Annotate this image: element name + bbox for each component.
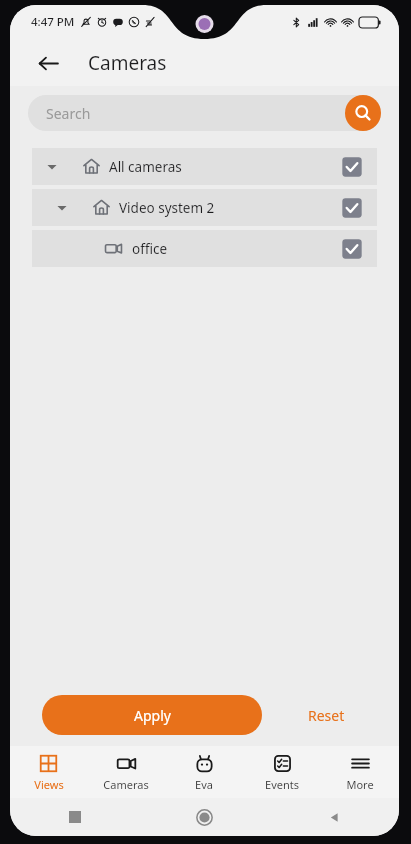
button[interactable]: Back: [28, 43, 68, 83]
staticText: Eva: [195, 777, 213, 792]
button[interactable]: Search: [345, 95, 381, 131]
staticText: More: [346, 777, 374, 792]
button[interactable]: office: [32, 230, 377, 267]
button[interactable]: Apply: [42, 695, 262, 735]
staticText: Video system 2: [119, 199, 215, 217]
staticText: office: [132, 240, 168, 258]
button[interactable]: All cameras: [32, 148, 377, 185]
button[interactable]: Events: [243, 746, 321, 798]
button[interactable]: Video system 2: [32, 189, 377, 226]
button[interactable]: Cameras: [87, 746, 165, 798]
button[interactable]: Selected: [341, 197, 363, 219]
button[interactable]: Search: [28, 95, 381, 131]
staticText: All cameras: [109, 158, 182, 176]
staticText: Search: [46, 104, 91, 123]
button[interactable]: Selected: [341, 238, 363, 260]
staticText: Events: [265, 777, 299, 792]
staticText: Views: [34, 777, 64, 792]
button[interactable]: Back: [269, 798, 399, 836]
button[interactable]: Home: [139, 798, 269, 836]
button[interactable]: Views: [10, 746, 87, 798]
staticText: Cameras: [103, 777, 149, 792]
staticText: Apply: [134, 706, 171, 725]
button[interactable]: Reset: [296, 698, 357, 733]
button[interactable]: More: [321, 746, 399, 798]
button[interactable]: Recents: [10, 798, 139, 836]
staticText: Reset: [308, 706, 345, 725]
button[interactable]: Eva: [165, 746, 243, 798]
button[interactable]: Selected: [341, 156, 363, 178]
staticText: 4:47 PM: [31, 14, 75, 30]
staticText: Cameras: [88, 50, 167, 76]
